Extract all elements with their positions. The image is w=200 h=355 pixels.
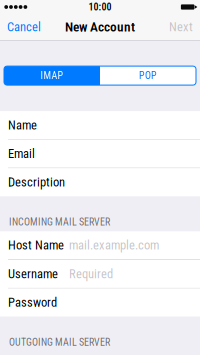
button[interactable]: IMAP <box>4 66 100 85</box>
staticText: 10:00 <box>88 1 111 13</box>
button[interactable]: Name <box>0 111 200 139</box>
staticText: OUTGOING MAIL SERVER <box>9 336 110 348</box>
button[interactable]: Next <box>161 14 200 40</box>
button[interactable]: Email <box>0 140 200 168</box>
button[interactable]: Description <box>0 168 200 196</box>
button[interactable]: Host Name <box>0 231 200 259</box>
staticText: New Account <box>65 19 135 35</box>
staticText: INCOMING MAIL SERVER <box>9 216 110 228</box>
staticText: Password <box>8 295 57 310</box>
button[interactable]: Username <box>0 260 200 288</box>
staticText: Name <box>8 118 37 132</box>
staticText: Required <box>69 267 113 281</box>
staticText: Cancel <box>7 20 41 34</box>
button[interactable]: POP <box>100 66 196 85</box>
button[interactable]: Password <box>0 288 200 316</box>
staticText: mail.example.com <box>69 238 159 253</box>
staticText: Host Name <box>8 238 64 253</box>
staticText: Description <box>8 175 65 190</box>
staticText: Username <box>8 267 58 281</box>
staticText: Email <box>8 146 35 161</box>
staticText: Next <box>169 20 193 34</box>
button[interactable]: Cancel <box>0 14 49 40</box>
staticText: IMAP <box>40 70 63 81</box>
staticText: POP <box>139 70 157 81</box>
